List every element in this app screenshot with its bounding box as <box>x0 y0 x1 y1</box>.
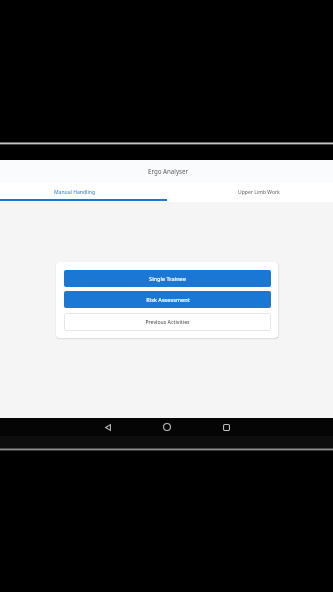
button[interactable]: Single Trainee <box>64 270 271 287</box>
staticText: Upper Limb Work <box>238 189 280 196</box>
staticText: Risk Assessment <box>146 296 190 304</box>
staticText: Previous Activities <box>145 319 190 326</box>
button[interactable]: Previous Activities <box>64 313 271 331</box>
staticText: Ergo Analyser <box>148 167 189 175</box>
button[interactable]: Back <box>101 420 115 434</box>
button[interactable]: Home <box>160 420 174 434</box>
staticText: Manual Handling <box>54 189 96 196</box>
button[interactable]: Manual Handling <box>0 181 166 202</box>
staticText: Single Trainee <box>149 275 186 283</box>
button[interactable]: Risk Assessment <box>64 291 271 308</box>
button[interactable]: Recents <box>219 420 233 434</box>
button[interactable]: Upper Limb Work <box>166 181 333 202</box>
